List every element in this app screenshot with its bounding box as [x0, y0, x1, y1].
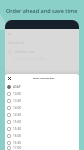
button[interactable]: 15:30: [5, 125, 79, 132]
button[interactable]: 17:00: [5, 146, 79, 150]
button[interactable]: 16:30: [5, 139, 79, 146]
button[interactable]: 16:00: [5, 132, 79, 139]
staticText: 14:30: [13, 113, 22, 117]
staticText: 13:00: [13, 92, 22, 96]
staticText: 16:30: [13, 141, 22, 145]
button[interactable]: Close: [6, 75, 13, 82]
button[interactable]: ASAP: [5, 83, 79, 90]
button[interactable]: 14:00: [5, 104, 79, 111]
button[interactable]: 13:00: [5, 90, 79, 97]
staticText: ASAP: [13, 85, 21, 89]
staticText: Checkout: [8, 40, 25, 45]
staticText: 16:00: [13, 134, 22, 138]
staticText: 17:00: [13, 146, 22, 150]
button[interactable]: 15:00: [5, 118, 79, 125]
button[interactable]: 13:30: [5, 97, 79, 104]
button[interactable]: Back: [6, 30, 13, 37]
staticText: Collection time: [14, 50, 36, 54]
staticText: 13:30: [13, 99, 22, 103]
staticText: 15:00: [13, 120, 22, 124]
staticText: Select collection time: [33, 77, 55, 80]
staticText: 15:30: [13, 127, 22, 131]
staticText: Order ahead and save time: [6, 7, 78, 14]
staticText: 14:00: [13, 106, 22, 110]
button[interactable]: 14:30: [5, 111, 79, 118]
